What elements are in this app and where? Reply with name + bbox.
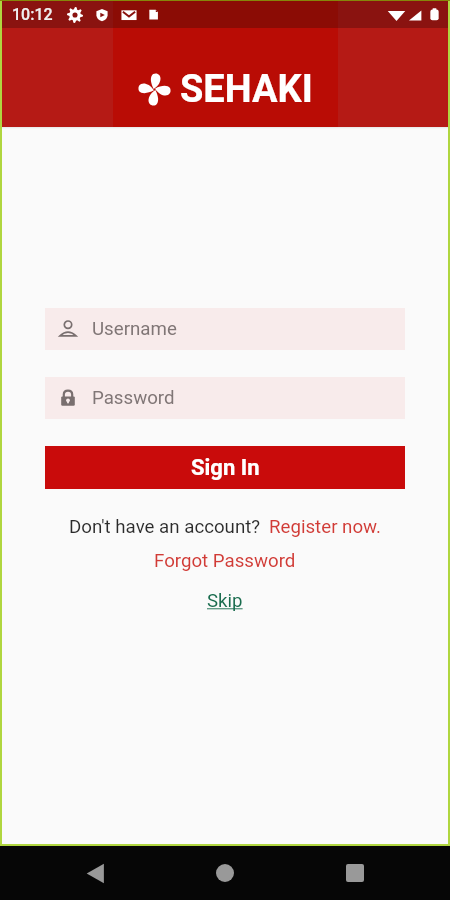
button[interactable]: Forgot Password — [154, 550, 296, 572]
staticText: Skip — [207, 590, 243, 612]
button[interactable]: Recent apps — [331, 849, 379, 897]
staticText: Password — [92, 387, 175, 409]
staticText: Username — [92, 318, 177, 340]
staticText: Forgot Password — [154, 550, 296, 572]
button[interactable]: Username — [45, 308, 405, 350]
button[interactable]: Password — [45, 377, 405, 419]
button[interactable]: Home — [201, 849, 249, 897]
staticText: Don't have an account? — [69, 516, 261, 538]
staticText: Sign In — [191, 455, 260, 481]
button[interactable]: Sign In — [45, 446, 405, 489]
button[interactable]: Back — [71, 849, 119, 897]
staticText: Register now. — [269, 516, 381, 538]
staticText: 10:12 — [12, 5, 53, 24]
staticText: SEHAKI — [180, 67, 313, 112]
button[interactable]: Register now. — [269, 516, 381, 538]
button[interactable]: Skip — [207, 590, 243, 612]
